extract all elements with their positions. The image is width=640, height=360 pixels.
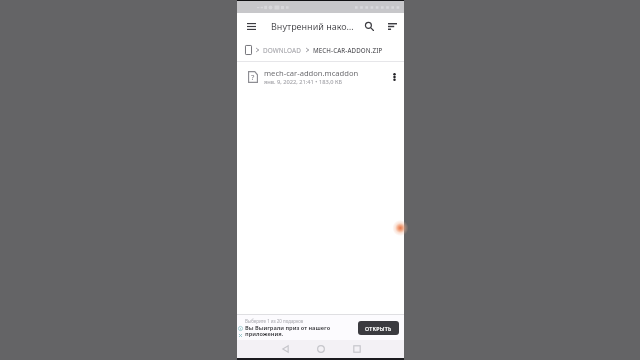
staticText: ОТКРЫТЬ xyxy=(365,325,392,332)
staticText: mech-car-addon.mcaddon xyxy=(264,68,359,78)
button[interactable]: Recents xyxy=(348,340,366,358)
staticText: Выберите 1 из 20 подарков xyxy=(245,318,304,324)
button[interactable]: Back xyxy=(276,340,294,358)
button[interactable]: More options xyxy=(385,68,403,86)
staticText: янв. 9, 2022, 21:41 • 183,0 КБ xyxy=(264,78,342,86)
button[interactable]: ОТКРЫТЬ xyxy=(358,321,399,335)
button[interactable]: Выберите 1 из 20 подарков xyxy=(237,315,404,340)
button[interactable]: Add xyxy=(391,219,404,237)
button[interactable]: ? xyxy=(237,62,404,92)
button[interactable]: Sort xyxy=(382,16,402,36)
staticText: ? xyxy=(251,72,255,82)
button[interactable]: Search xyxy=(359,16,379,36)
staticText: DOWNLOAD xyxy=(263,46,302,55)
button[interactable]: Menu xyxy=(241,16,261,36)
staticText: Вы Выиграли приз от нашего приложения. xyxy=(245,324,331,338)
staticText: Внутренний нако… xyxy=(271,20,354,32)
staticText: MECH-CAR-ADDON.ZIP xyxy=(313,46,383,54)
button[interactable]: Home xyxy=(312,340,330,358)
